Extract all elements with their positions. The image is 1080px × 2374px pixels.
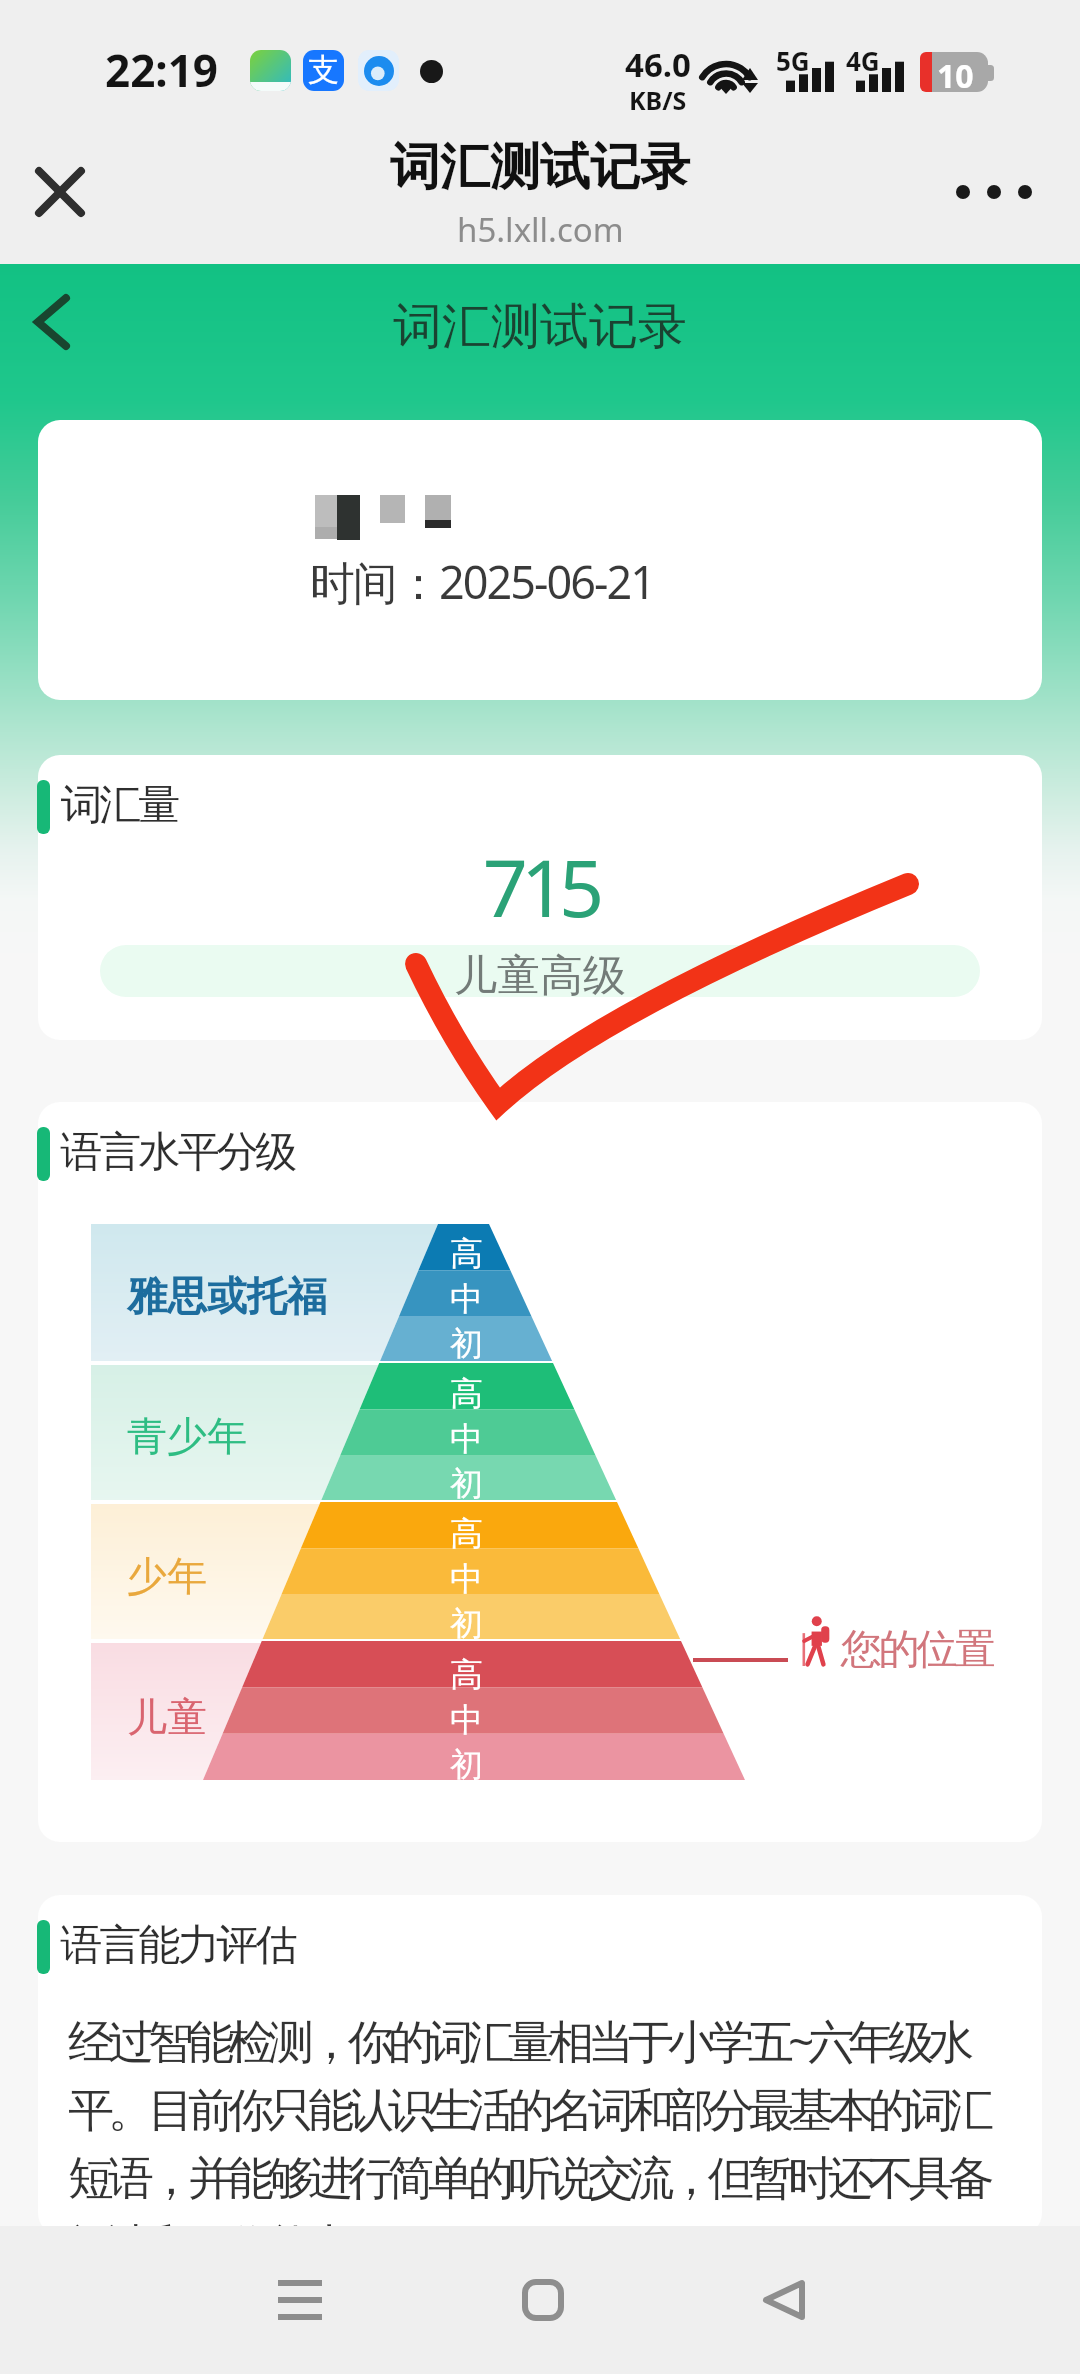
staticText: 语言能力评估 [62,1919,296,1972]
staticText: 高 [450,1654,483,1696]
staticText: 初 [450,1463,483,1505]
button[interactable]: Back [10,280,94,364]
button[interactable]: Home [483,2240,603,2360]
button[interactable]: Recent apps [240,2240,360,2360]
staticText: 中 [450,1418,483,1460]
staticText: 儿童 [127,1692,207,1742]
staticText: KB/S [629,83,687,117]
staticText: 高 [450,1233,483,1275]
button[interactable]: Close [26,158,94,226]
staticText: 715 [38,833,1042,941]
staticText: h5.lxll.com [457,207,624,252]
staticText: 5G [776,43,810,78]
staticText: 支 [308,50,339,89]
staticText: 您的位置 [842,1624,994,1676]
button[interactable]: More options [944,156,1044,228]
staticText: 中 [450,1699,483,1741]
staticText: 高 [450,1373,483,1415]
staticText: 雅思或托福 [127,1271,327,1321]
staticText: 词汇测试记录 [393,296,687,358]
staticText: 初 [450,1603,483,1645]
staticText: 中 [450,1558,483,1600]
staticText: 10 [937,54,974,98]
staticText: 儿童高级 [38,949,1042,1003]
staticText: 中 [450,1278,483,1320]
staticText: 初 [450,1323,483,1365]
staticText: 4G [846,43,880,78]
staticText: 青少年 [127,1411,247,1461]
staticText: 经过智能检测，你的词汇量相当于小学五~六年级水平。目前你只能认识生活的名词和部分… [68,2009,996,2235]
staticText: 语言水平分级 [62,1126,296,1179]
staticText: 高 [450,1513,483,1555]
staticText: 初 [450,1744,483,1786]
staticText: 22:19 [105,40,219,100]
staticText: 46.0 [625,42,691,87]
staticText: 时间：2025-06-21 [310,551,654,612]
staticText: 少年 [127,1551,207,1601]
button[interactable]: Back [724,2240,844,2360]
staticText: 词汇测试记录 [390,136,690,199]
staticText: 词汇量 [62,779,179,832]
